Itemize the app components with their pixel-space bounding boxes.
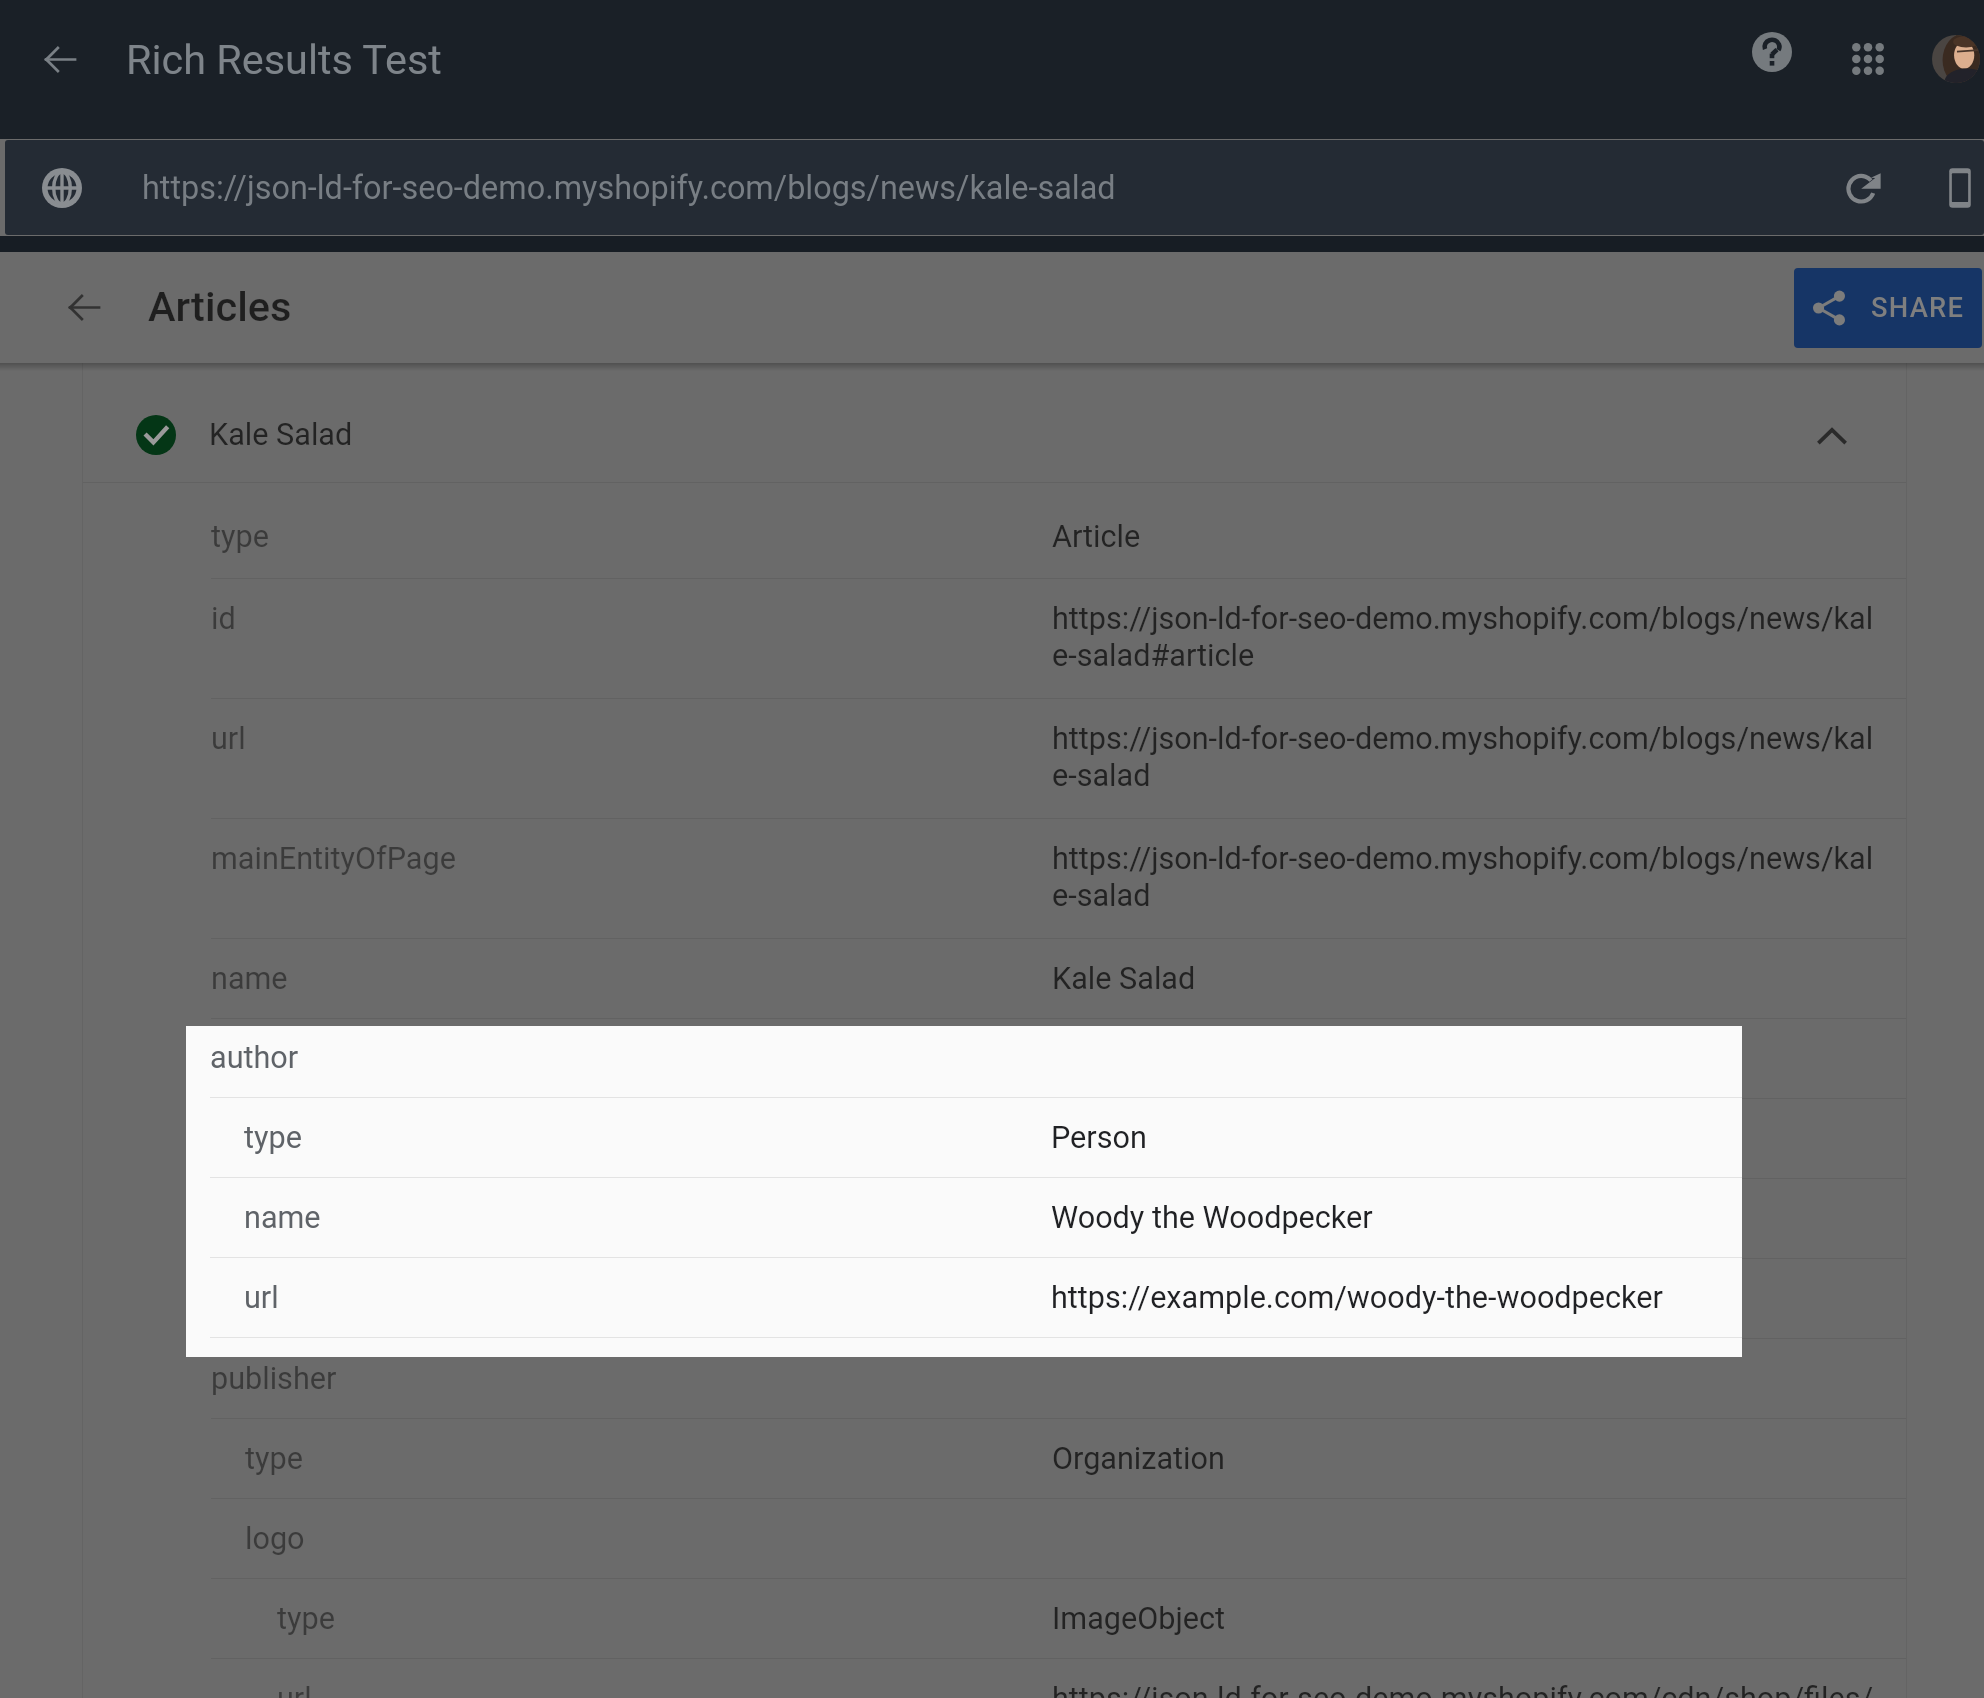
button[interactable]: author xyxy=(83,1019,1906,1098)
button[interactable]: type xyxy=(83,1419,1906,1498)
button[interactable]: author xyxy=(186,1026,1742,1097)
staticText: mainEntityOfPage xyxy=(211,841,456,877)
button[interactable]: Account xyxy=(1932,35,1980,83)
staticText: url xyxy=(211,721,246,757)
staticText: url xyxy=(244,1280,279,1316)
staticText: https://json-ld-for-seo-demo.myshopify.c… xyxy=(1052,721,1874,793)
staticText: SHARE xyxy=(1871,292,1965,324)
staticText: ImageObject xyxy=(1052,1601,1225,1637)
staticText: https://json-ld-for-seo-demo.myshopify.c… xyxy=(1052,601,1874,673)
button[interactable]: Site information xyxy=(5,140,118,235)
button[interactable]: type xyxy=(83,483,1906,578)
button[interactable]: Kale Salad xyxy=(83,363,1906,482)
button[interactable]: url xyxy=(83,699,1906,818)
button[interactable]: Google apps xyxy=(1818,9,1918,109)
staticText: Kale Salad xyxy=(1052,961,1196,997)
button[interactable]: id xyxy=(83,579,1906,698)
button[interactable]: name xyxy=(186,1178,1742,1257)
button[interactable]: type xyxy=(186,1098,1742,1177)
staticText: Rich Results Test xyxy=(126,36,442,85)
button[interactable]: SHARE xyxy=(1794,268,1982,348)
staticText: Organization xyxy=(1052,1441,1225,1477)
staticText: https://example.com/woody-the-woodpecker xyxy=(1052,1281,1664,1317)
staticText: https://json-ld-for-seo-demo.myshopify.c… xyxy=(142,169,1116,207)
staticText: Woody the Woodpecker xyxy=(1051,1200,1373,1236)
staticText: https://json-ld-for-seo-demo.myshopify.c… xyxy=(1052,841,1874,913)
staticText: author xyxy=(211,1041,300,1077)
staticText: type xyxy=(244,1120,302,1156)
staticText: logo xyxy=(245,1521,305,1557)
staticText: type xyxy=(245,1441,303,1477)
button[interactable]: Help xyxy=(1726,13,1818,105)
staticText: author xyxy=(210,1040,299,1076)
button[interactable]: Device preview xyxy=(1936,164,1984,212)
staticText: https://example.com/woody-the-woodpecker xyxy=(1051,1280,1663,1316)
staticText: Articles xyxy=(148,283,292,332)
staticText: type xyxy=(245,1121,303,1157)
staticText: Woody the Woodpecker xyxy=(1052,1201,1374,1237)
button[interactable]: url xyxy=(83,1659,1906,1698)
button[interactable]: Reload xyxy=(1839,164,1887,212)
button[interactable]: url xyxy=(186,1258,1742,1337)
staticText: Person xyxy=(1051,1120,1147,1156)
button[interactable]: mainEntityOfPage xyxy=(83,819,1906,938)
other: Collapse xyxy=(1817,420,1847,450)
staticText: https://json-ld-for-seo-demo.myshopify.c… xyxy=(1052,1681,1874,1698)
button[interactable]: url xyxy=(83,1259,1906,1338)
staticText: name xyxy=(211,961,288,997)
staticText: type xyxy=(211,519,269,555)
staticText: name xyxy=(244,1200,321,1236)
button[interactable]: type xyxy=(83,1579,1906,1658)
button[interactable]: Back xyxy=(0,252,140,363)
staticText: url xyxy=(277,1681,312,1698)
button[interactable]: name xyxy=(83,1179,1906,1258)
button[interactable]: name xyxy=(83,939,1906,1018)
staticText: id xyxy=(211,601,236,637)
staticText: name xyxy=(245,1201,322,1237)
staticText: url xyxy=(245,1281,280,1317)
staticText: Kale Salad xyxy=(209,417,353,453)
staticText: type xyxy=(277,1601,335,1637)
staticText: Person xyxy=(1052,1121,1148,1157)
staticText: publisher xyxy=(211,1361,337,1397)
staticText: Article xyxy=(1052,519,1141,555)
button[interactable]: publisher xyxy=(83,1339,1906,1418)
button[interactable]: type xyxy=(83,1099,1906,1178)
button[interactable]: Back xyxy=(0,0,118,118)
